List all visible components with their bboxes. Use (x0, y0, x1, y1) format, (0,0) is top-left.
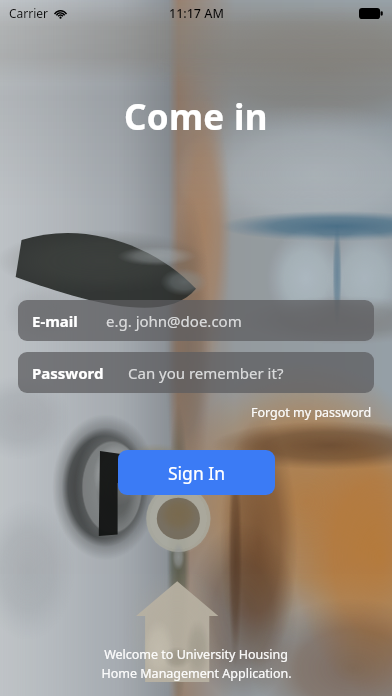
staticText: e.g. john@doe.com (106, 311, 242, 331)
button[interactable]: E-mail (18, 300, 374, 341)
other: Battery full (359, 8, 383, 19)
button[interactable]: Forgot my password (249, 402, 374, 423)
staticText: Password (32, 363, 128, 383)
staticText: Carrier (9, 5, 49, 21)
staticText: Sign In (168, 461, 225, 485)
staticText: Can you remember it? (128, 363, 284, 383)
staticText: Welcome to University Housing (104, 646, 288, 663)
button[interactable]: Sign In (118, 450, 275, 495)
button[interactable]: Password (18, 352, 374, 393)
other: Wi-Fi (54, 7, 67, 20)
staticText: Forgot my password (251, 404, 372, 421)
staticText: Come in (124, 93, 268, 141)
staticText: E-mail (32, 311, 106, 331)
staticText: 11:17 AM (169, 5, 224, 22)
staticText: Home Management Application. (101, 665, 292, 682)
